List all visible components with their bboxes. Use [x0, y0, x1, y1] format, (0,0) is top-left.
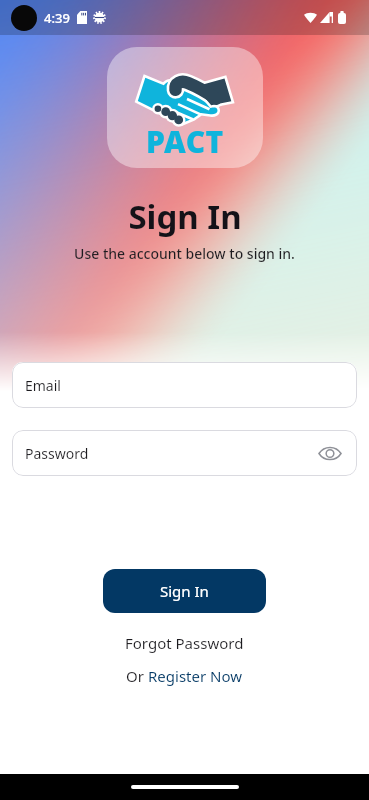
staticText: Sign In	[128, 194, 242, 239]
staticText: Forgot Password	[125, 633, 244, 653]
staticText: PACT	[146, 121, 224, 162]
staticText: Register Now	[148, 666, 243, 686]
button[interactable]: Forgot Password	[117, 629, 252, 657]
staticText: Email	[25, 376, 61, 395]
button[interactable]: Register Now	[148, 666, 243, 686]
staticText: Use the account below to sign in.	[74, 244, 295, 263]
button[interactable]: Email	[12, 362, 357, 408]
staticText: Sign In	[160, 581, 209, 601]
staticText: Password	[25, 444, 89, 463]
button[interactable]: Show password	[317, 440, 343, 466]
staticText: 4:39	[44, 9, 70, 27]
button[interactable]: Password	[12, 430, 357, 476]
staticText: Or	[126, 666, 148, 686]
button[interactable]: Sign In	[103, 569, 266, 613]
